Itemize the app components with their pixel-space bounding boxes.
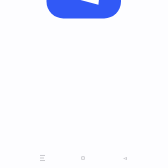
button[interactable]: Recent apps [32,148,52,168]
button[interactable]: Home [73,148,93,168]
button[interactable]: Back [115,148,135,168]
button[interactable]: App logo [47,0,121,18]
